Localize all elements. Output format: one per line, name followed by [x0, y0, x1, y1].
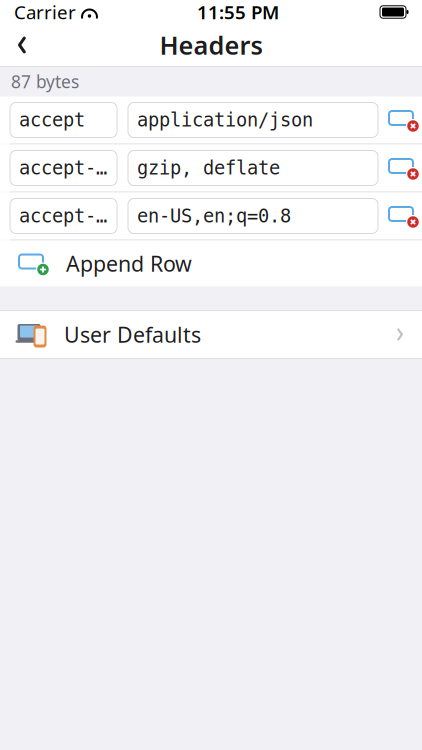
staticText: accept [19, 109, 85, 131]
staticText: Append Row [66, 249, 192, 278]
button[interactable]: User Defaults [0, 311, 422, 358]
button[interactable]: Delete accept-enco… [384, 144, 422, 191]
staticText: accept-enco… [19, 157, 117, 179]
staticText: en-US,en;q=0.8 [137, 205, 291, 227]
staticText: application/json [137, 109, 313, 131]
button[interactable]: Delete accept [384, 96, 422, 143]
staticText: Headers [159, 28, 262, 62]
staticText: User Defaults [64, 320, 201, 349]
button[interactable]: Append Row [0, 240, 422, 286]
staticText: 11:55 PM [197, 0, 279, 24]
staticText: Carrier [14, 0, 76, 24]
staticText: 87 bytes [11, 70, 79, 93]
staticText: accept-lang… [19, 205, 117, 227]
button[interactable]: Back [0, 25, 44, 65]
button[interactable]: Delete accept-lang… [384, 192, 422, 239]
staticText: gzip, deflate [137, 157, 280, 179]
